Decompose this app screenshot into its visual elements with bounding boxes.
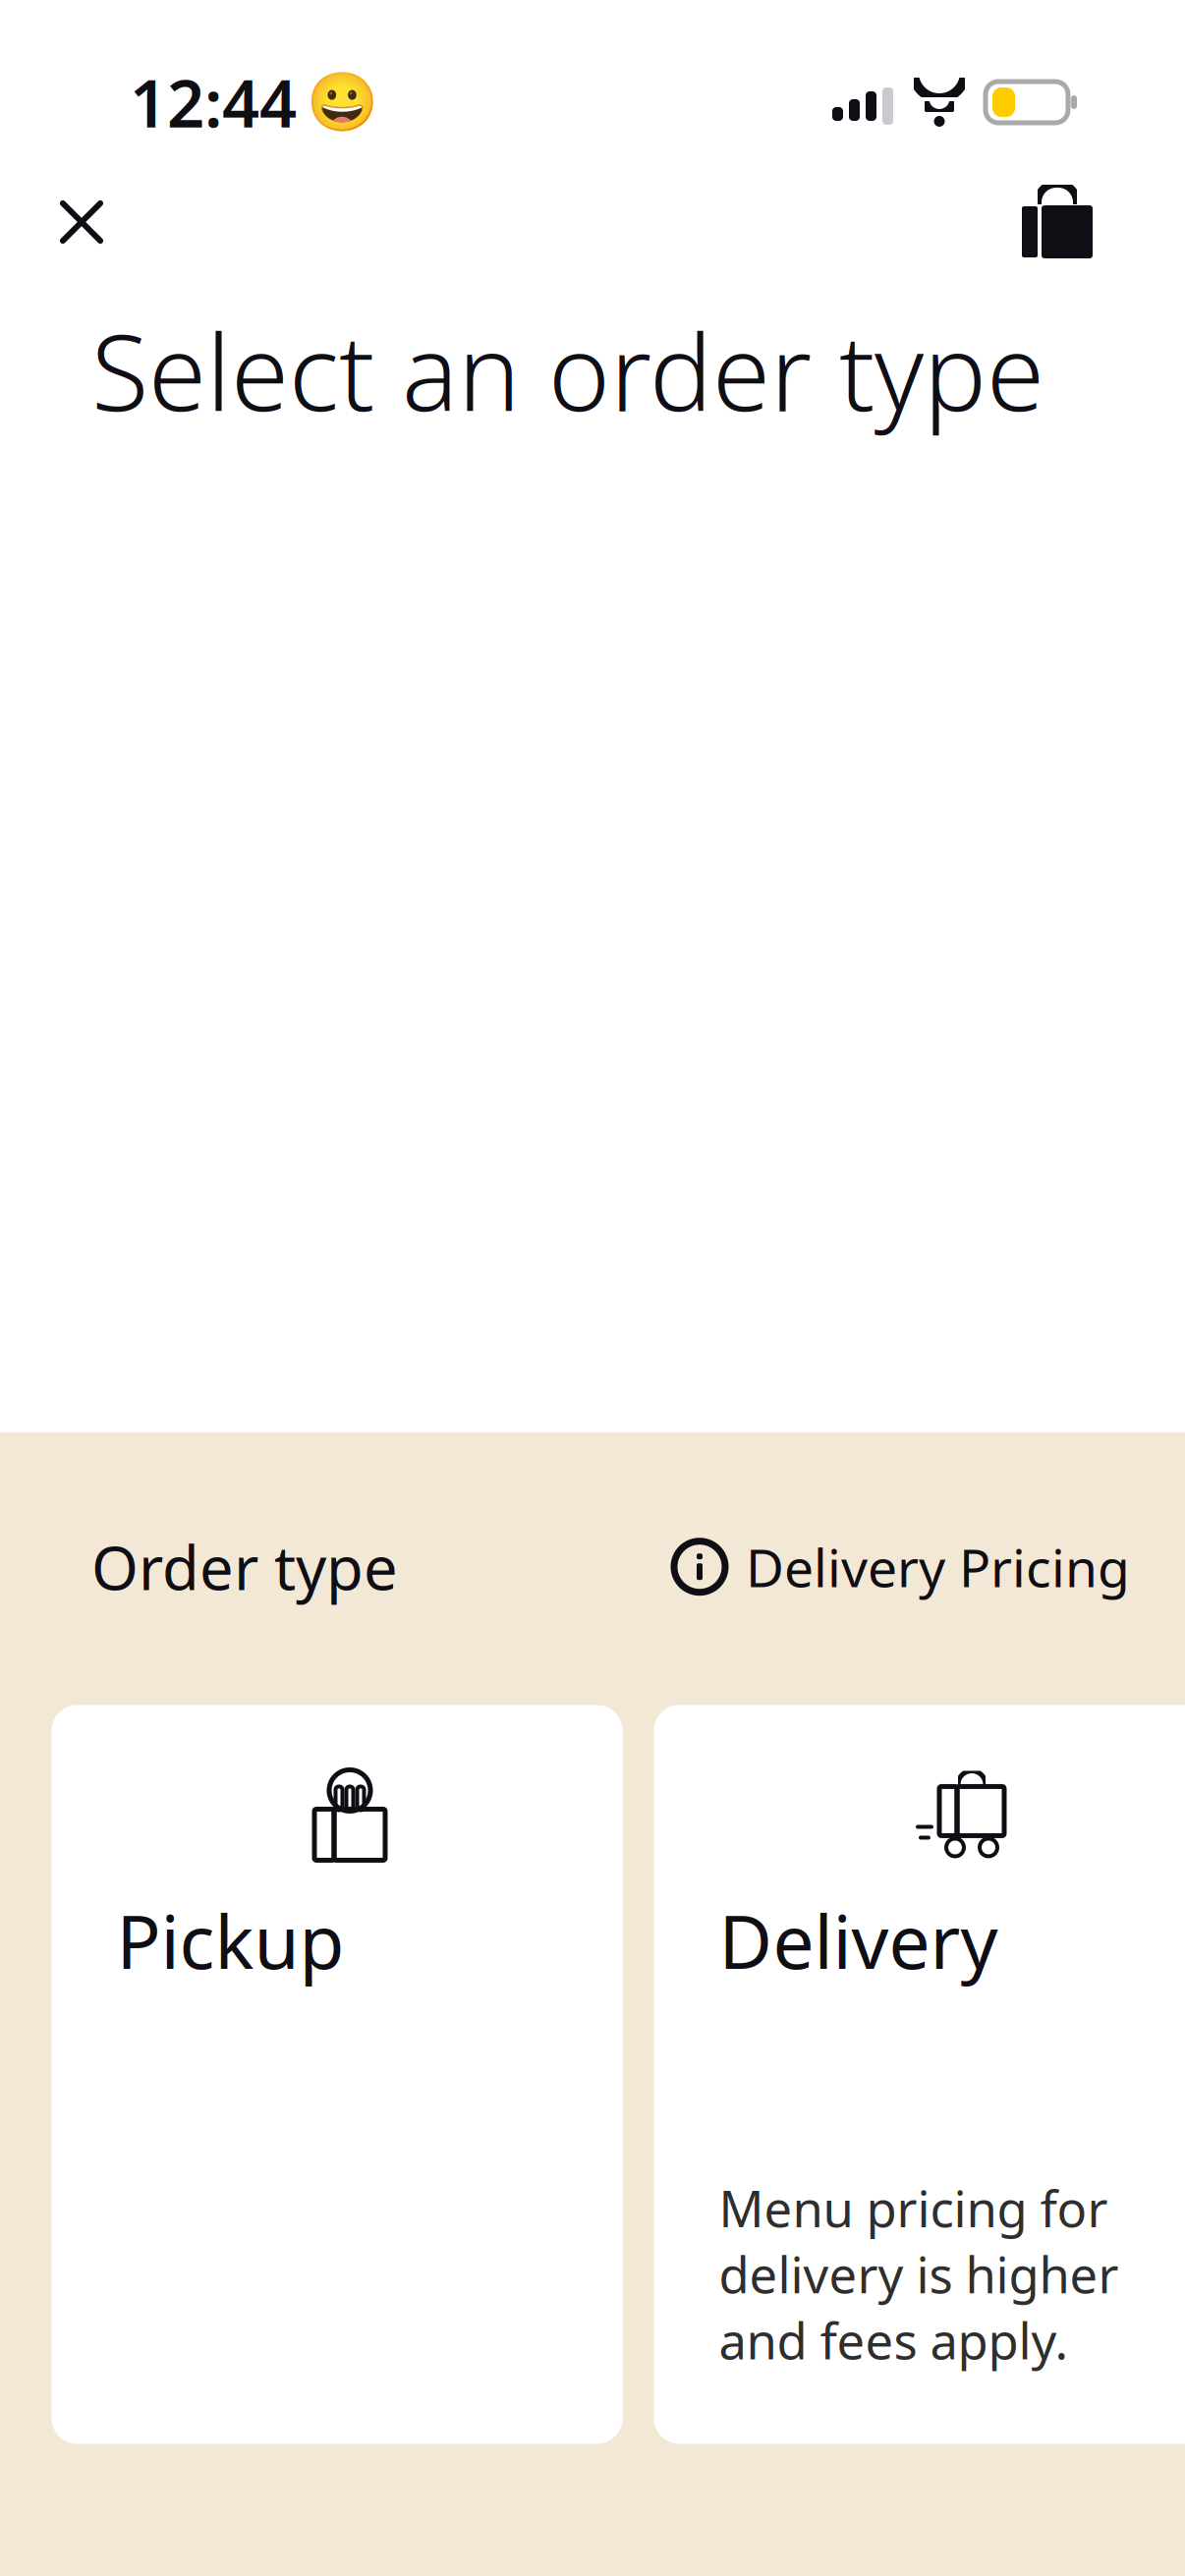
staticText: 12:44 bbox=[130, 59, 297, 146]
button[interactable]: Bag bbox=[1003, 175, 1111, 269]
staticText: Order type bbox=[91, 1527, 398, 1607]
staticText: Delivery bbox=[719, 1892, 998, 1989]
staticText: Select an order type bbox=[91, 301, 1044, 440]
staticText: Pickup bbox=[116, 1892, 344, 1989]
button[interactable]: Delivery bbox=[654, 1705, 1185, 2444]
staticText: Menu pricing for delivery is higher and … bbox=[719, 2175, 1119, 2373]
staticText: Delivery Pricing bbox=[746, 1532, 1130, 1602]
button[interactable]: Close bbox=[34, 175, 129, 269]
staticText: 😀 bbox=[307, 69, 378, 135]
button[interactable]: Delivery Pricing bbox=[673, 1532, 1130, 1602]
button[interactable]: Pickup bbox=[52, 1705, 622, 2444]
